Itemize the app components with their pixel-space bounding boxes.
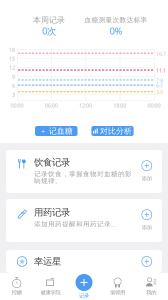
staticText: 幸运星 (34, 256, 61, 267)
button[interactable]: 控糖 (0, 273, 34, 300)
staticText: 18:00 (113, 102, 126, 109)
staticText: 15 (9, 55, 15, 62)
button[interactable]: 记录 (67, 273, 101, 300)
staticText: 记录 (79, 292, 89, 299)
staticText: 响规律。 (34, 177, 62, 185)
staticText: ＋ (40, 127, 47, 135)
staticText: 添加 (142, 175, 152, 182)
staticText: 12:00 (79, 102, 92, 109)
staticText: 血糖测量次数达标率 (84, 16, 147, 24)
staticText: 6 (12, 82, 15, 89)
staticText: 健康学院 (40, 289, 60, 296)
staticText: 0次 (42, 25, 56, 37)
staticText: 记血糖 (49, 126, 73, 136)
staticText: 9 (12, 73, 15, 80)
staticText: 控糖 (12, 289, 22, 296)
button[interactable]: ＋ (35, 126, 77, 136)
staticText: 7.8 (156, 77, 163, 84)
staticText: 本周记录 (33, 15, 65, 25)
staticText: 16.7 (156, 50, 166, 57)
button[interactable]: 对比分析 (91, 126, 134, 136)
staticText: 值得用 (110, 289, 125, 296)
staticText: 06:00 (45, 102, 58, 109)
staticText: 用药记录 (34, 207, 70, 218)
staticText: 00:00 (147, 102, 160, 109)
staticText: 添加 (142, 224, 152, 231)
staticText: 00:00 (10, 102, 23, 109)
button[interactable]: 用药记录 (6, 199, 162, 242)
staticText: 11.1 (156, 67, 166, 74)
staticText: 3 (12, 91, 15, 98)
button[interactable]: 幸运星 (6, 250, 162, 273)
staticText: 添加用药提醒和用药记录… (34, 220, 116, 228)
button[interactable]: 健康学院 (34, 273, 67, 300)
staticText: 12 (9, 64, 15, 71)
staticText: 18 (9, 46, 15, 53)
staticText: 对比分析 (100, 126, 132, 136)
button[interactable]: 值得用 (101, 273, 134, 300)
staticText: 饮食记录 (34, 157, 70, 168)
staticText: 0% (109, 25, 122, 37)
button[interactable]: 我的 (134, 273, 168, 300)
button[interactable]: 饮食记录 (6, 150, 162, 193)
staticText: 记录饮食，掌握食物对血糖的影 (34, 170, 132, 178)
staticText: 6.1 (156, 82, 163, 89)
staticText: 我的 (146, 289, 156, 296)
staticText: 3.9 (156, 89, 163, 96)
